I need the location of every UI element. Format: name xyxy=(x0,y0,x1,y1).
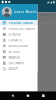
staticText: ABOUT xyxy=(8,67,17,71)
staticText: Luciana Macedo xyxy=(14,10,37,14)
staticText: PERSONAL TIMELINE xyxy=(8,21,32,25)
button[interactable]: Home xyxy=(25,93,31,98)
button[interactable]: Back xyxy=(10,93,15,99)
staticText: NOTIFICATIONS xyxy=(8,44,27,48)
button[interactable]: CONTACTS xyxy=(0,37,37,43)
button[interactable]: PERSONAL TIMELINE xyxy=(0,20,37,26)
button[interactable]: ABOUT xyxy=(0,66,37,72)
button[interactable]: HISTORICAL TIMELINE xyxy=(0,26,37,32)
button[interactable]: NOTIFICATIONS xyxy=(0,43,37,49)
staticText: DOCUMENTS xyxy=(8,61,23,65)
staticText: CONTACTS xyxy=(8,38,21,42)
staticText: SCHEDULE xyxy=(8,33,20,36)
staticText: Dimmed title xyxy=(38,13,56,17)
button[interactable]: MESSAGES xyxy=(0,54,37,60)
staticText: HISTORICAL TIMELINE xyxy=(8,27,34,30)
button[interactable]: DOCUMENTS xyxy=(0,60,37,66)
staticText: MESSAGES xyxy=(8,56,19,59)
button[interactable]: SETTINGS xyxy=(0,49,37,55)
staticText: SETTINGS xyxy=(8,50,19,53)
button[interactable]: Recents xyxy=(41,93,46,99)
button[interactable]: SCHEDULE xyxy=(0,31,37,37)
